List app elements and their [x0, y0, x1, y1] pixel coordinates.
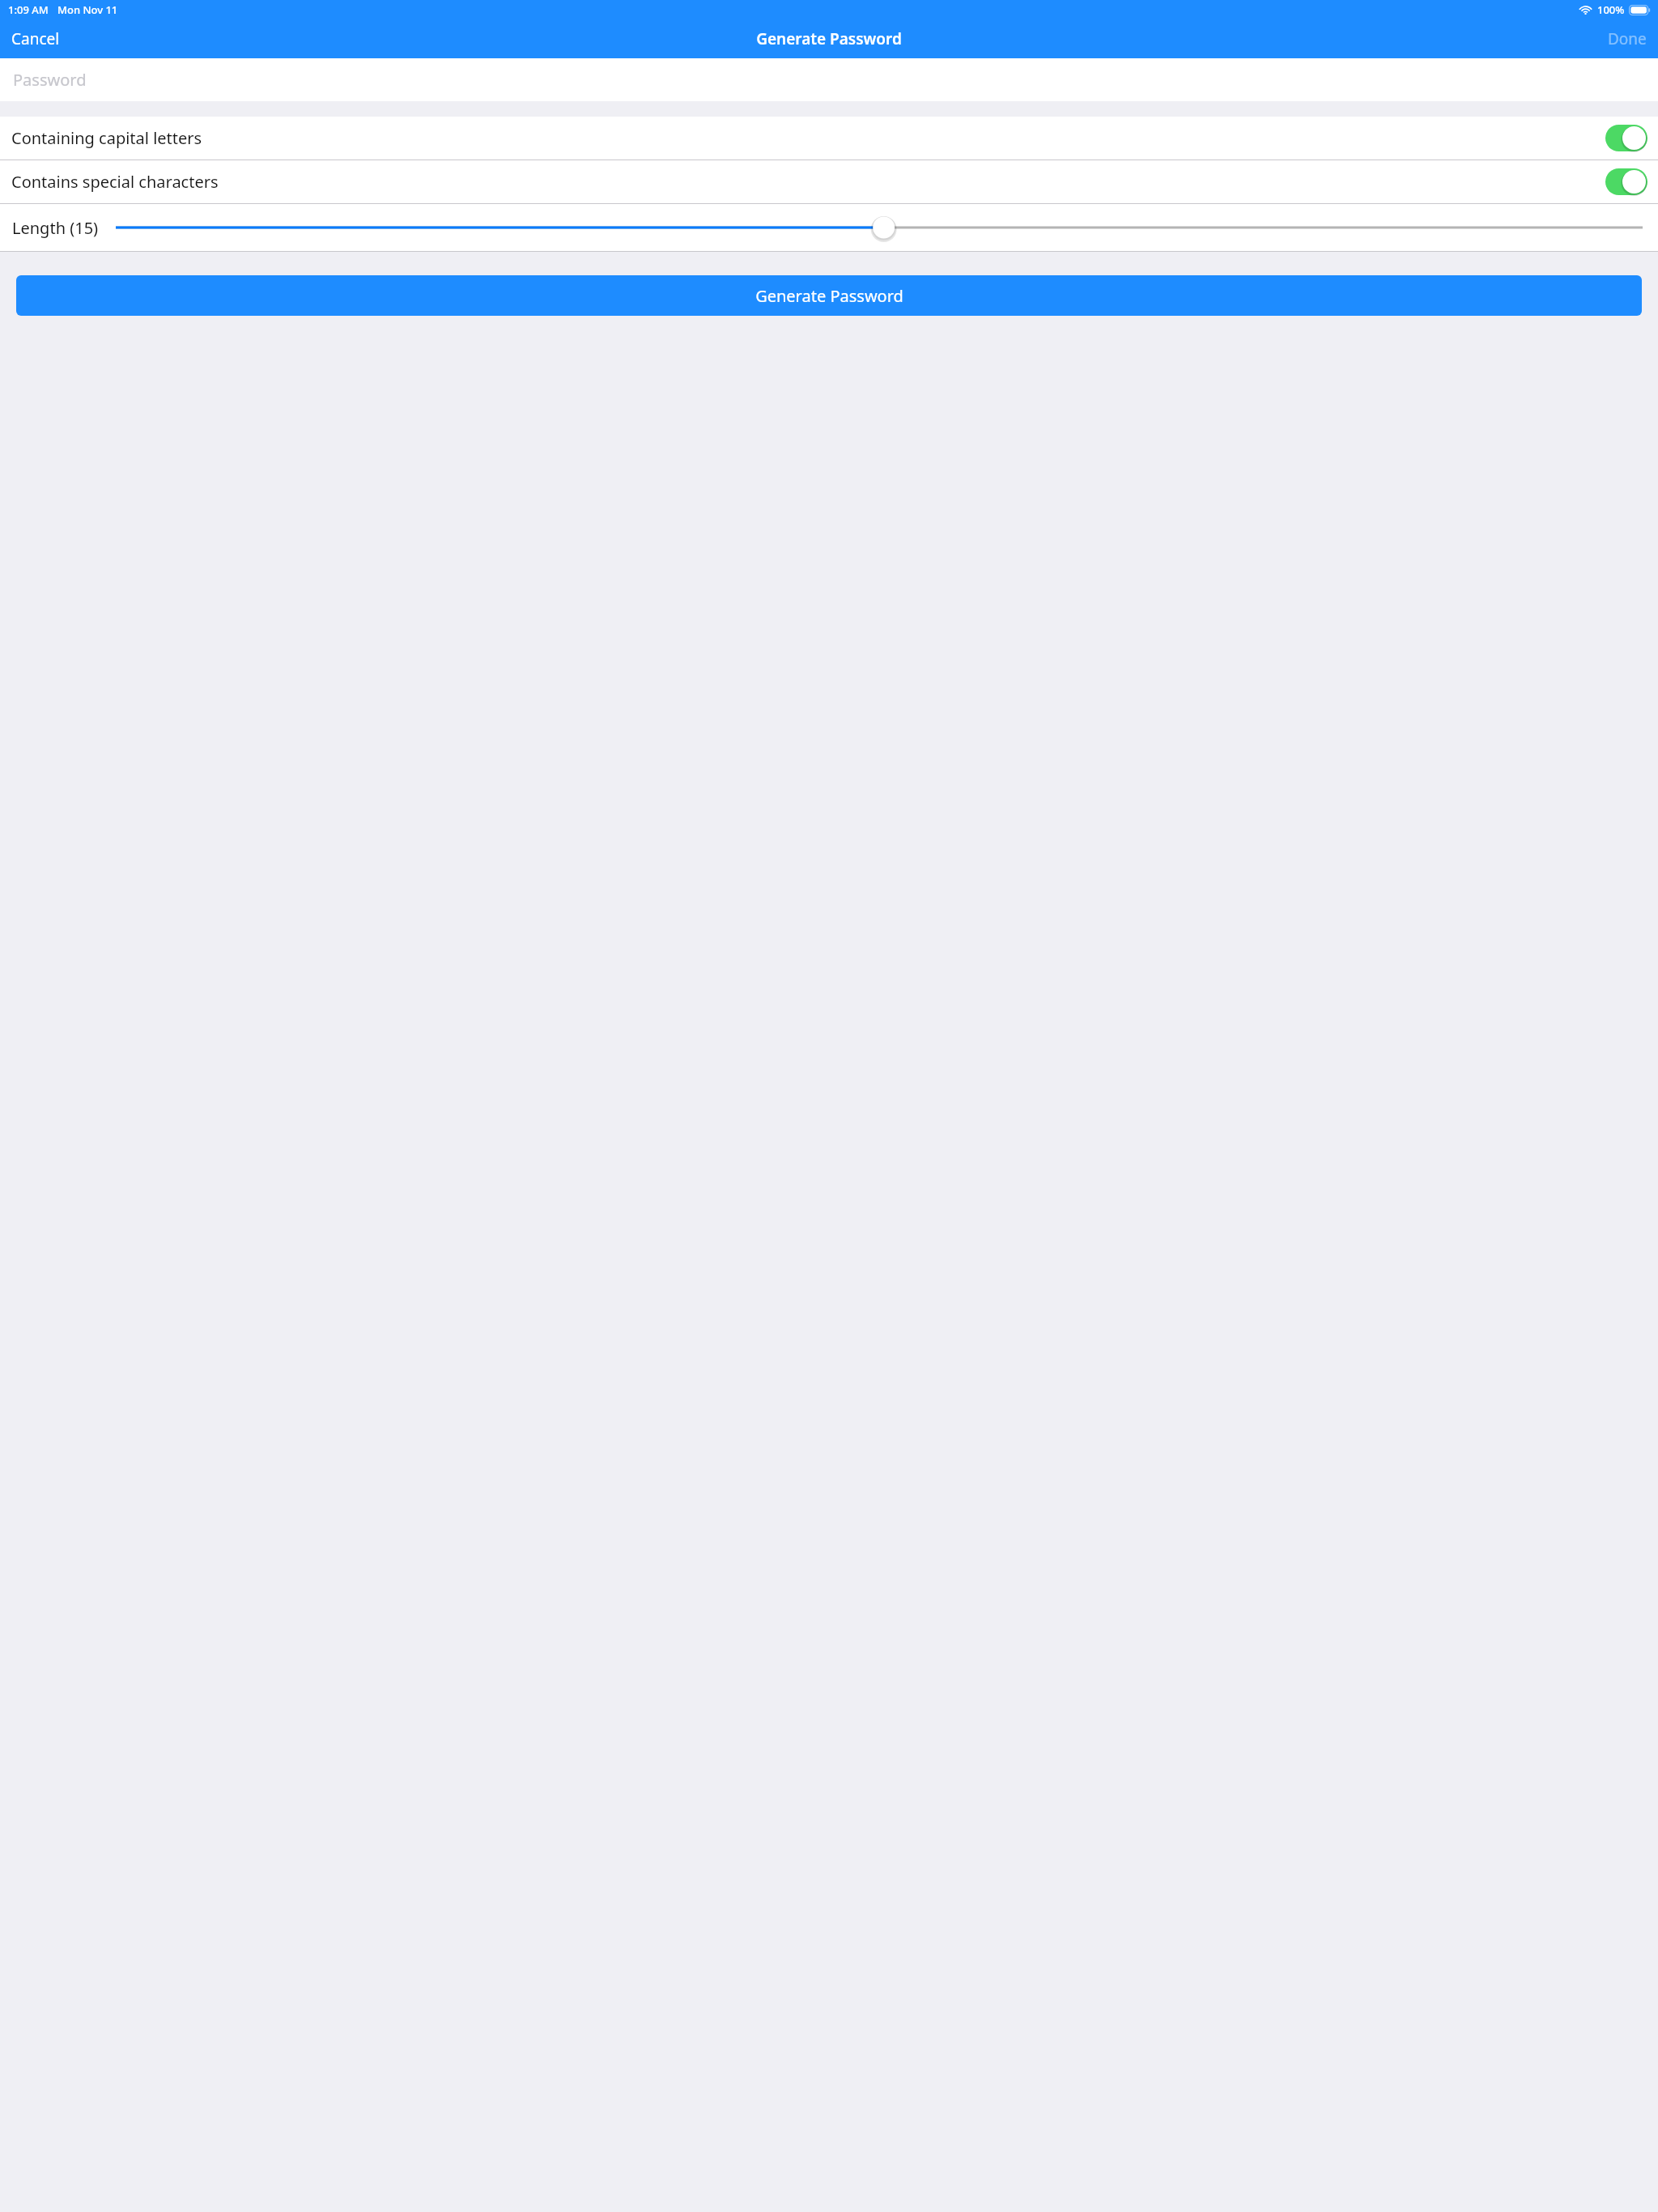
button[interactable]: Toggle on	[1605, 168, 1647, 195]
staticText: Generate Password	[755, 285, 903, 307]
button[interactable]: Password	[0, 58, 1658, 101]
staticText: Done	[1608, 28, 1647, 49]
staticText: Contains special characters	[11, 171, 1605, 193]
staticText: 1:09 AM	[8, 2, 49, 17]
staticText: Containing capital letters	[11, 127, 1605, 149]
button[interactable]: Contains special characters	[0, 160, 1658, 203]
button[interactable]: Containing capital letters	[0, 117, 1658, 160]
staticText: 100%	[1597, 2, 1625, 17]
button[interactable]: Password length slider	[116, 211, 1643, 244]
staticText: Mon Nov 11	[57, 2, 118, 17]
button[interactable]: Generate Password	[16, 275, 1642, 316]
staticText: Generate Password	[756, 28, 902, 49]
button[interactable]: Toggle on	[1605, 125, 1647, 151]
staticText: Password	[13, 69, 87, 91]
staticText: Cancel	[11, 28, 60, 49]
button[interactable]: Cancel	[0, 19, 71, 58]
button[interactable]: Done	[1596, 19, 1658, 58]
staticText: Length (15)	[12, 217, 99, 239]
